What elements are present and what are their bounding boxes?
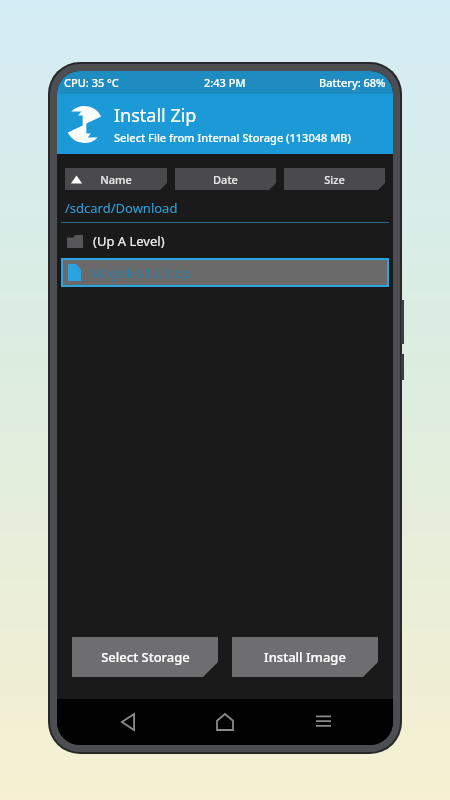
staticText: CPU: 35 °C [64,75,119,90]
staticText: Select Storage [101,648,190,666]
staticText: Install Zip [114,103,197,128]
button[interactable]: Home [198,699,252,745]
staticText: Date [213,172,238,187]
staticText: Battery: 68% [319,75,386,90]
staticText: Magisk-v13.3.zip [90,264,192,282]
staticText: Select File from Internal Storage (11304… [114,130,351,145]
staticText: Size [324,172,345,187]
button[interactable]: Install Image [232,637,378,677]
staticText: Install Image [264,648,346,666]
button[interactable]: Select Storage [72,637,218,677]
other: Magisk [66,106,103,143]
button[interactable]: Back [101,699,155,745]
button[interactable]: (Up A Level) [57,228,393,254]
button[interactable]: Magisk-v13.3.zip [61,258,389,287]
button[interactable]: Magisk [57,94,393,154]
staticText: 2:43 PM [204,75,246,90]
staticText: /sdcard/Download [65,199,178,217]
button[interactable]: Size [284,168,385,190]
staticText: (Up A Level) [93,232,165,250]
button[interactable]: Recent apps [296,699,350,745]
button[interactable]: Date [175,168,276,190]
staticText: Name [100,172,132,187]
button[interactable]: Name [65,168,167,190]
